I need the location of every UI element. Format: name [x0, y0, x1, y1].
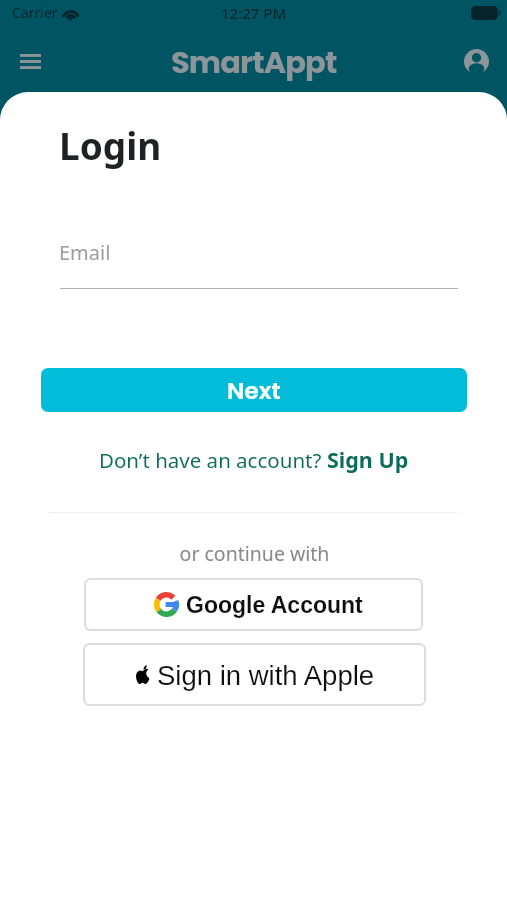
staticText: or continue with: [1, 540, 507, 567]
staticText: Sign in with Apple: [157, 660, 375, 691]
button[interactable]: Don’t have an account?: [0, 444, 507, 474]
button[interactable]: Account: [451, 36, 501, 86]
staticText: Next: [227, 374, 281, 407]
staticText: Login: [59, 120, 162, 170]
staticText: 12:27 PM: [221, 3, 287, 23]
button[interactable]: Sign in with Apple: [83, 643, 426, 706]
button[interactable]: Google Account: [84, 578, 423, 631]
staticText: Sign Up: [327, 445, 409, 474]
button[interactable]: Open navigation menu: [3, 36, 58, 86]
button[interactable]: Next: [41, 368, 467, 412]
staticText: Carrier: [12, 3, 58, 22]
staticText: SmartAppt: [171, 41, 337, 84]
staticText: Email: [59, 239, 111, 266]
staticText: Don’t have an account?: [99, 446, 327, 474]
staticText: Google Account: [186, 592, 363, 618]
